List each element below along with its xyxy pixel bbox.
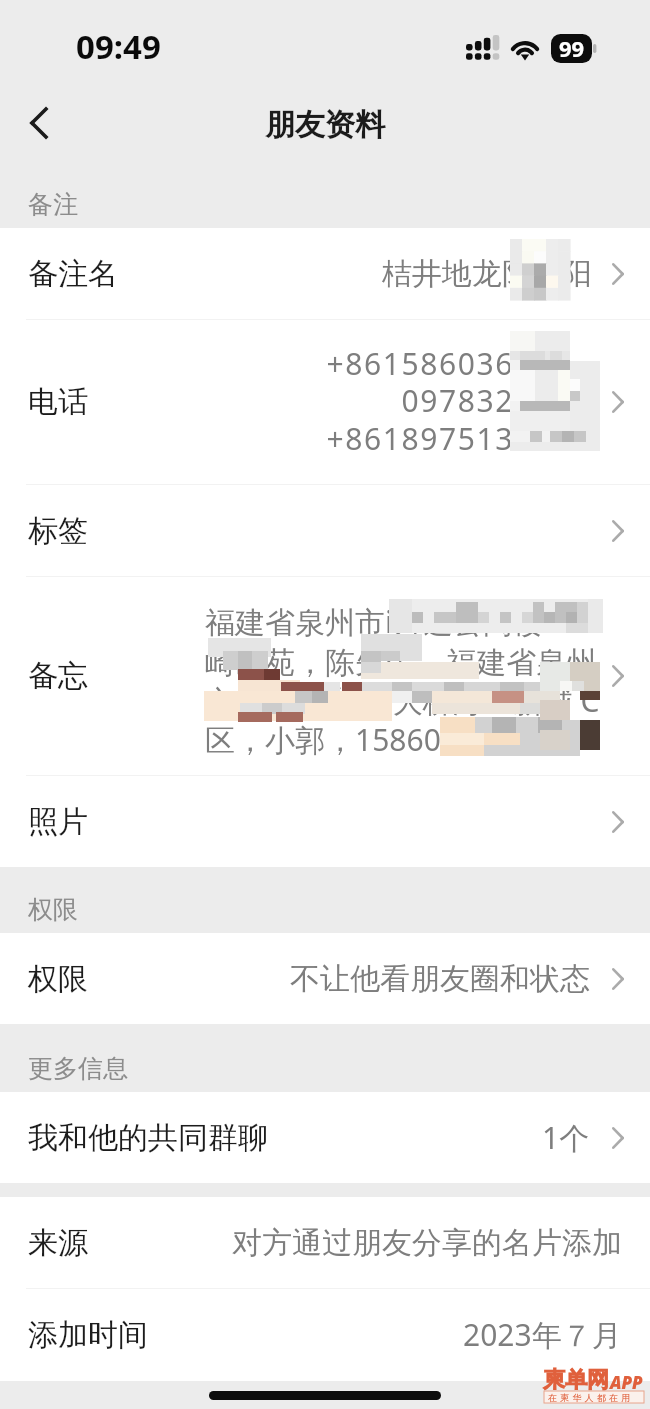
staticText: +861586036 097832 +861897513 (196, 343, 514, 459)
staticText: 备注 (28, 189, 78, 220)
staticText: 标签 (28, 512, 88, 550)
staticText: 99 (559, 33, 585, 63)
button[interactable]: 添加时间 (0, 1289, 650, 1380)
staticText: 照片 (28, 803, 88, 841)
staticText: 我和他的共同群聊 (28, 1119, 268, 1157)
staticText: 09:49 (76, 24, 161, 69)
staticText: 福建省泉州市i万达公寓楼 2 崎山苑，陈先生 福建省泉州 市丰泽区东海 大桥海丝… (205, 601, 625, 760)
staticText: APP (610, 1371, 643, 1394)
button[interactable]: 电话 (0, 320, 650, 484)
button[interactable]: 权限 (0, 933, 650, 1024)
staticText: 权限 (28, 894, 78, 925)
staticText: 添加时间 (28, 1316, 148, 1354)
staticText: 对方通过朋友分享的名片添加 (232, 1224, 622, 1262)
staticText: 在柬华人都在用 (548, 1392, 634, 1403)
button[interactable]: 我和他的共同群聊 (0, 1092, 650, 1183)
staticText: 柬单网 (543, 1366, 609, 1394)
button[interactable]: 来源 (0, 1197, 650, 1288)
button[interactable]: 备注名 (0, 228, 650, 319)
staticText: 2023年７月 (463, 1314, 622, 1355)
staticText: 来源 (28, 1224, 88, 1262)
button[interactable]: 照片 (0, 776, 650, 867)
staticText: 权限 (28, 960, 88, 998)
staticText: 备忘 (28, 657, 88, 695)
button[interactable]: Back (8, 90, 70, 156)
staticText: 备注名 (28, 255, 118, 293)
button[interactable]: 备忘 (0, 577, 650, 775)
staticText: 1个 (542, 1117, 590, 1158)
staticText: 不让他看朋友圈和状态 (290, 960, 590, 998)
button[interactable]: 标签 (0, 485, 650, 576)
staticText: 电话 (28, 383, 88, 421)
staticText: 桔井地龙阳宫阳 (382, 255, 592, 293)
staticText: 朋友资料 (265, 106, 385, 144)
staticText: 更多信息 (28, 1053, 128, 1084)
